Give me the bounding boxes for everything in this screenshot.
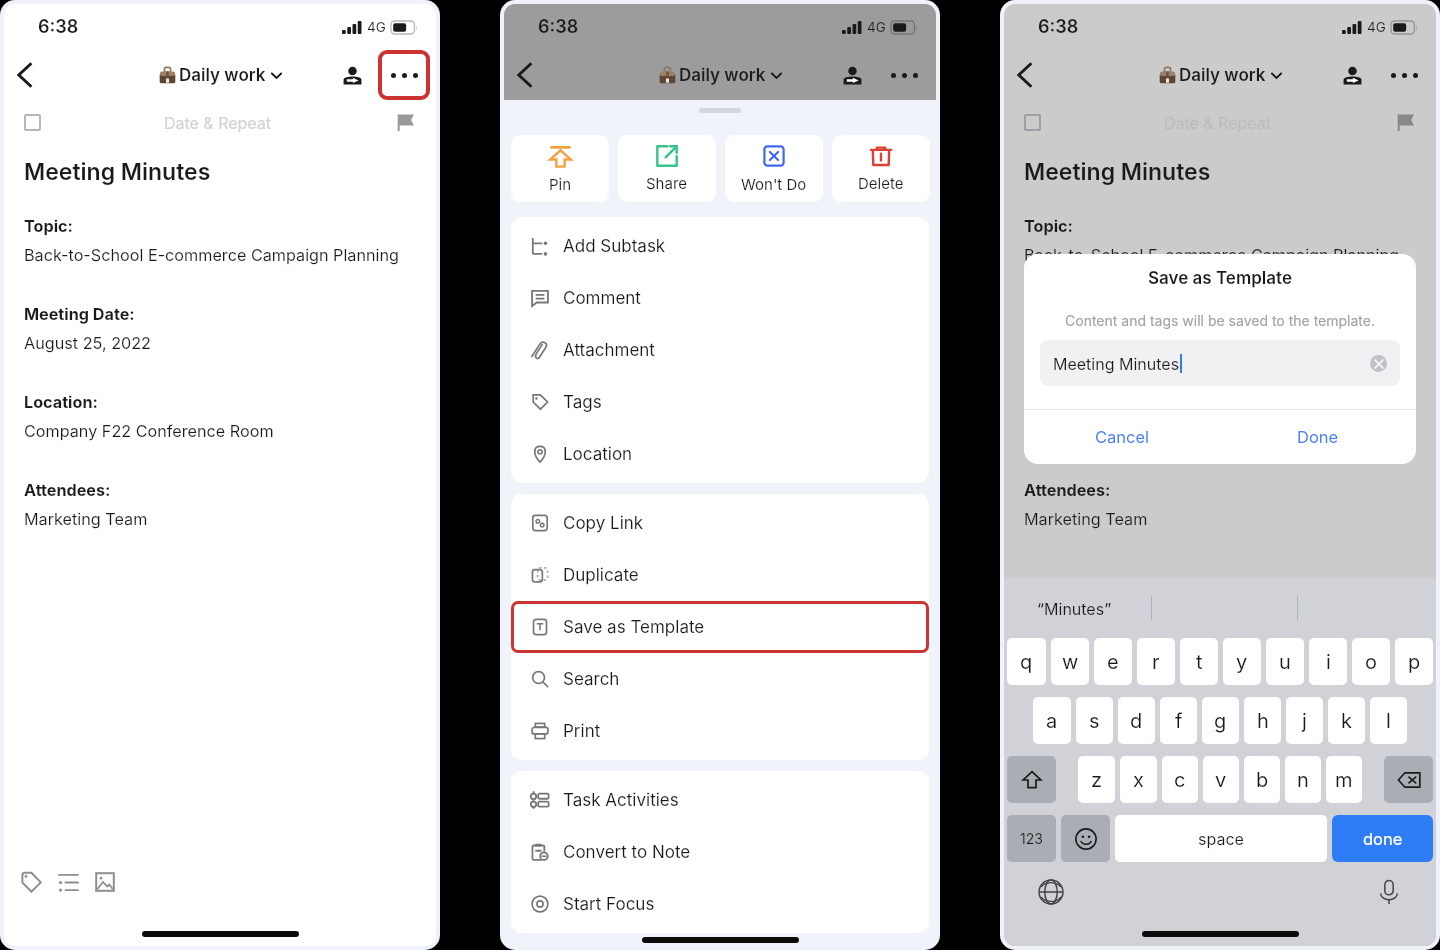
button[interactable]: Emoji bbox=[1061, 815, 1110, 862]
staticText: Share bbox=[646, 174, 688, 192]
staticText: p bbox=[1408, 650, 1421, 674]
button[interactable]: Backspace bbox=[1384, 756, 1433, 803]
staticText: Attendees: bbox=[24, 480, 111, 500]
button[interactable]: Convert to Note bbox=[511, 826, 929, 878]
button[interactable]: Attachment bbox=[511, 324, 929, 376]
button[interactable]: Share bbox=[618, 135, 716, 202]
staticText: Back-to-School E-commerce Campaign Plann… bbox=[24, 245, 399, 265]
staticText: Meeting Minutes bbox=[1053, 354, 1180, 373]
button[interactable]: Checklist bbox=[50, 864, 86, 900]
staticText: w bbox=[1062, 650, 1079, 674]
staticText: k bbox=[1341, 709, 1352, 733]
staticText: Meeting Date: bbox=[1024, 304, 1135, 324]
staticText: l bbox=[1386, 709, 1391, 733]
button[interactable]: Clear bbox=[1370, 355, 1387, 372]
staticText: 6:38 bbox=[38, 16, 79, 38]
staticText: Meeting Minutes bbox=[1024, 158, 1211, 186]
button[interactable]: More options bbox=[878, 50, 930, 100]
button[interactable]: j bbox=[1286, 697, 1323, 744]
button[interactable]: Numbers bbox=[1007, 815, 1056, 862]
button[interactable]: Daily work bbox=[159, 65, 282, 86]
staticText: j bbox=[1302, 709, 1307, 733]
button[interactable]: Back bbox=[6, 55, 46, 95]
button[interactable]: t bbox=[1180, 638, 1218, 685]
staticText: Location: bbox=[24, 392, 98, 412]
button[interactable]: Dictate bbox=[1375, 878, 1403, 906]
button[interactable]: o bbox=[1352, 638, 1390, 685]
staticText: Back-to-School E-commerce Campaign Plann… bbox=[1024, 245, 1399, 265]
staticText: y bbox=[1236, 650, 1248, 674]
button[interactable]: More options bbox=[378, 50, 430, 100]
button[interactable]: w bbox=[1051, 638, 1089, 685]
staticText: Tags bbox=[563, 392, 602, 413]
button[interactable]: y bbox=[1223, 638, 1261, 685]
button[interactable]: Cancel bbox=[1024, 410, 1220, 464]
button[interactable]: Copy Link bbox=[511, 497, 929, 549]
button[interactable]: Daily work bbox=[1159, 65, 1282, 86]
button[interactable]: s bbox=[1076, 697, 1113, 744]
staticText: Daily work bbox=[679, 65, 766, 86]
staticText: 4G bbox=[1367, 19, 1386, 35]
button[interactable]: Assign bbox=[834, 57, 870, 93]
staticText: Company F22 Conference Room bbox=[24, 421, 274, 441]
button[interactable]: Won't Do bbox=[725, 135, 823, 202]
button[interactable]: Back bbox=[1006, 55, 1046, 95]
button[interactable]: e bbox=[1094, 638, 1132, 685]
staticText: m bbox=[1335, 768, 1353, 792]
button[interactable]: i bbox=[1309, 638, 1347, 685]
button[interactable]: c bbox=[1162, 756, 1198, 803]
button[interactable]: Assign bbox=[334, 57, 370, 93]
button[interactable]: Add Subtask bbox=[511, 220, 929, 272]
button[interactable]: Complete task bbox=[24, 114, 41, 131]
button[interactable]: g bbox=[1202, 697, 1239, 744]
button[interactable]: Assign bbox=[1334, 57, 1370, 93]
button[interactable]: p bbox=[1395, 638, 1433, 685]
button[interactable]: Back bbox=[506, 55, 546, 95]
button[interactable]: Tags bbox=[511, 376, 929, 428]
button[interactable]: Start Focus bbox=[511, 878, 929, 930]
button[interactable]: k bbox=[1328, 697, 1365, 744]
button[interactable]: Pin bbox=[511, 135, 609, 202]
staticText: Done bbox=[1297, 427, 1339, 447]
staticText: Comment bbox=[563, 288, 641, 309]
staticText: Content and tags will be saved to the te… bbox=[1024, 312, 1416, 329]
button[interactable]: Date & Repeat bbox=[41, 113, 394, 132]
button[interactable]: u bbox=[1266, 638, 1304, 685]
button[interactable]: a bbox=[1033, 697, 1071, 744]
button[interactable]: h bbox=[1244, 697, 1281, 744]
button[interactable]: m bbox=[1326, 756, 1362, 803]
button[interactable]: Location bbox=[511, 428, 929, 480]
staticText: space bbox=[1198, 829, 1244, 848]
button[interactable]: Tags bbox=[13, 864, 49, 900]
button[interactable]: More options bbox=[1378, 50, 1430, 100]
button[interactable]: n bbox=[1285, 756, 1321, 803]
button[interactable]: x bbox=[1120, 756, 1157, 803]
staticText: Delete bbox=[858, 174, 904, 192]
button[interactable]: d bbox=[1118, 697, 1155, 744]
button[interactable]: f bbox=[1160, 697, 1197, 744]
button[interactable]: Change keyboard bbox=[1037, 878, 1065, 906]
button[interactable]: Search bbox=[511, 653, 929, 705]
button[interactable]: l bbox=[1370, 697, 1407, 744]
button[interactable]: Delete bbox=[832, 135, 930, 202]
staticText: h bbox=[1257, 709, 1269, 733]
button[interactable]: q bbox=[1007, 638, 1046, 685]
button[interactable]: Shift bbox=[1007, 756, 1056, 803]
button[interactable]: Done bbox=[1220, 410, 1416, 464]
button[interactable]: Priority bbox=[394, 111, 416, 133]
button[interactable]: Comment bbox=[511, 272, 929, 324]
button[interactable]: Image bbox=[87, 864, 123, 900]
button[interactable]: Print bbox=[511, 705, 929, 757]
button[interactable]: b bbox=[1244, 756, 1280, 803]
button[interactable]: r bbox=[1137, 638, 1175, 685]
button[interactable]: done bbox=[1332, 815, 1433, 862]
button[interactable]: space bbox=[1115, 815, 1327, 862]
button[interactable]: Daily work bbox=[659, 65, 782, 86]
staticText: o bbox=[1365, 650, 1377, 674]
button[interactable]: v bbox=[1203, 756, 1239, 803]
button[interactable]: Task Activities bbox=[511, 774, 929, 826]
staticText: v bbox=[1215, 768, 1227, 792]
button[interactable]: z bbox=[1078, 756, 1115, 803]
button[interactable]: Save as Template bbox=[511, 601, 929, 653]
button[interactable]: Duplicate bbox=[511, 549, 929, 601]
